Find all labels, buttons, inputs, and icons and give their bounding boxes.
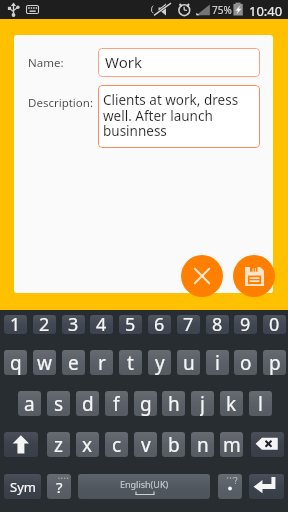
button[interactable]: 5 xyxy=(119,315,142,334)
button[interactable]: English(UK) xyxy=(78,474,210,499)
staticText: 75% xyxy=(212,3,232,17)
staticText: ? xyxy=(234,475,238,486)
button[interactable]: p xyxy=(263,350,286,375)
staticText: 0 xyxy=(269,315,280,331)
button[interactable]: Shift xyxy=(4,432,38,457)
button[interactable]: 8 xyxy=(206,315,229,334)
button[interactable]: Sym xyxy=(4,474,41,499)
button[interactable]: Backspace xyxy=(251,432,284,457)
button[interactable]: Cancel xyxy=(181,255,223,297)
staticText: 8 xyxy=(212,315,223,331)
staticText: 2 xyxy=(39,315,50,331)
button[interactable]: y xyxy=(148,350,171,375)
button[interactable]: g xyxy=(134,391,157,416)
button[interactable]: q xyxy=(4,350,27,375)
button[interactable]: f xyxy=(105,391,128,416)
staticText: g xyxy=(140,391,152,416)
staticText: Work xyxy=(105,52,142,72)
button[interactable]: c xyxy=(105,432,128,457)
button[interactable]: 7 xyxy=(177,315,200,334)
staticText: k xyxy=(226,391,237,416)
staticText: 4 xyxy=(96,315,107,331)
button[interactable]: t xyxy=(119,350,142,375)
staticText: 10:40 xyxy=(249,2,283,20)
button[interactable]: ? xyxy=(47,474,71,499)
staticText: Name: xyxy=(28,55,64,71)
staticText: Clients at work, dress well. After launc… xyxy=(103,91,257,140)
staticText: s xyxy=(54,391,64,416)
button[interactable]: Work xyxy=(98,48,260,77)
staticText: n xyxy=(197,432,209,457)
staticText: j xyxy=(200,391,205,416)
staticText: w xyxy=(37,350,52,375)
button[interactable]: i xyxy=(206,350,229,375)
staticText: q xyxy=(10,350,22,375)
button[interactable]: s xyxy=(47,391,70,416)
button[interactable]: d xyxy=(76,391,99,416)
staticText: v xyxy=(141,432,151,457)
button[interactable]: u xyxy=(177,350,200,375)
staticText: d xyxy=(82,391,94,416)
staticText: u xyxy=(183,350,195,375)
staticText: 9 xyxy=(240,315,251,331)
staticText: x xyxy=(82,432,93,457)
button[interactable]: 3 xyxy=(62,315,85,334)
staticText: 5 xyxy=(125,315,136,331)
button[interactable]: m xyxy=(220,432,243,457)
staticText: l xyxy=(258,391,263,416)
button[interactable]: Period xyxy=(218,474,242,499)
staticText: 6 xyxy=(154,315,165,331)
button[interactable]: 9 xyxy=(234,315,257,334)
button[interactable]: r xyxy=(90,350,113,375)
button[interactable]: e xyxy=(62,350,85,375)
button[interactable]: h xyxy=(162,391,185,416)
button[interactable]: b xyxy=(162,432,185,457)
button[interactable]: Save xyxy=(233,255,275,297)
button[interactable]: 2 xyxy=(33,315,56,334)
staticText: Sym xyxy=(10,478,36,496)
button[interactable]: Clients at work, dress well. After launc… xyxy=(98,85,260,148)
staticText: c xyxy=(112,432,122,457)
button[interactable]: v xyxy=(134,432,157,457)
staticText: p xyxy=(269,350,281,375)
button[interactable]: 1 xyxy=(4,315,27,334)
button[interactable]: w xyxy=(33,350,56,375)
staticText: 1 xyxy=(10,315,21,331)
staticText: English(UK) xyxy=(120,478,169,490)
staticText: f xyxy=(113,391,120,416)
button[interactable]: 6 xyxy=(148,315,171,334)
button[interactable]: a xyxy=(18,391,41,416)
button[interactable]: 0 xyxy=(263,315,286,334)
staticText: y xyxy=(155,350,165,375)
staticText: i xyxy=(215,350,220,375)
staticText: Description: xyxy=(28,95,93,111)
staticText: b xyxy=(168,432,180,457)
staticText: z xyxy=(54,432,63,457)
staticText: o xyxy=(240,350,252,375)
staticText: e xyxy=(68,350,79,375)
button[interactable]: l xyxy=(249,391,272,416)
button[interactable]: Enter xyxy=(249,474,284,499)
staticText: 7 xyxy=(183,315,194,331)
staticText: ? xyxy=(56,477,63,497)
staticText: m xyxy=(223,432,241,457)
button[interactable]: o xyxy=(234,350,257,375)
button[interactable]: x xyxy=(76,432,99,457)
button[interactable]: 4 xyxy=(90,315,113,334)
staticText: t xyxy=(127,350,134,375)
staticText: 3 xyxy=(68,315,79,331)
button[interactable]: j xyxy=(191,391,214,416)
staticText: h xyxy=(168,391,180,416)
button[interactable]: n xyxy=(191,432,214,457)
button[interactable]: z xyxy=(47,432,70,457)
staticText: a xyxy=(24,391,35,416)
button[interactable]: k xyxy=(220,391,243,416)
staticText: r xyxy=(98,350,106,375)
